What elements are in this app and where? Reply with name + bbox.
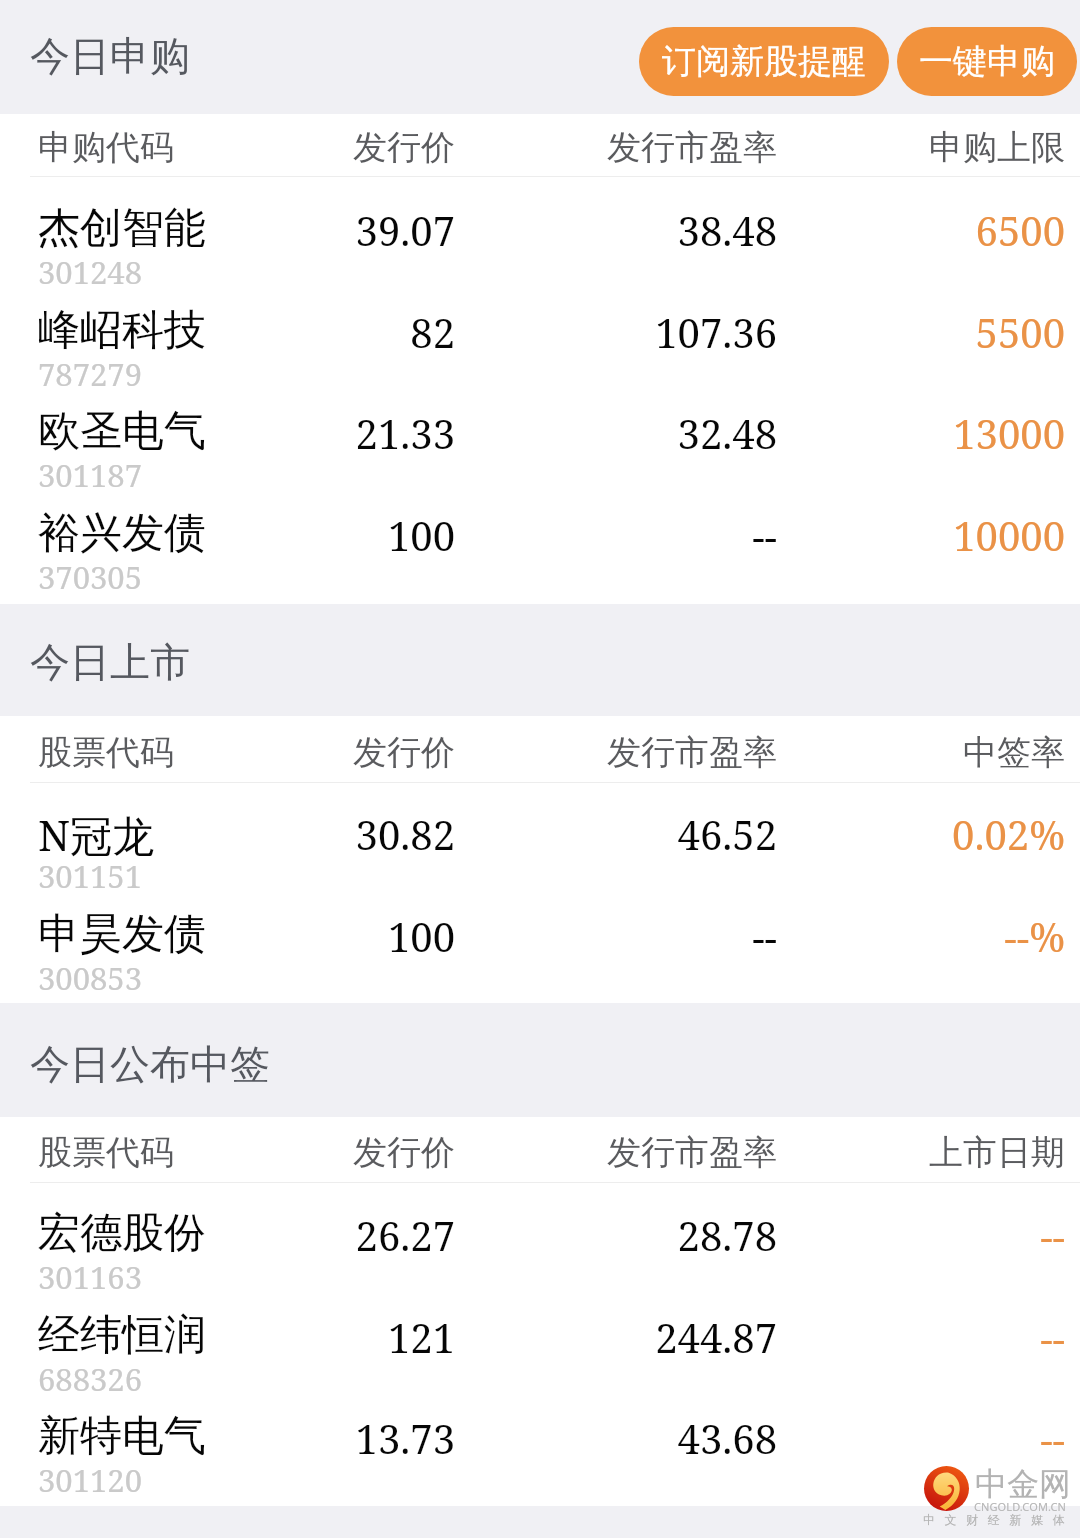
staticText: --%: [745, 909, 1065, 963]
staticText: --: [745, 1310, 1065, 1364]
staticText: 787279: [38, 353, 142, 395]
staticText: 申购代码: [38, 126, 174, 169]
staticText: 裕兴发债: [38, 507, 206, 560]
staticText: 发行价: [135, 1131, 455, 1174]
staticText: 32.48: [457, 406, 777, 460]
staticText: 43.68: [457, 1411, 777, 1465]
staticText: 13.73: [135, 1411, 455, 1465]
staticText: --: [457, 909, 777, 963]
staticText: 今日公布中签: [30, 1039, 270, 1089]
staticText: 6500: [745, 203, 1065, 257]
staticText: 5500: [745, 305, 1065, 359]
staticText: 301163: [38, 1256, 142, 1298]
staticText: 107.36: [457, 305, 777, 359]
button[interactable]: 峰岹科技: [0, 279, 1080, 381]
staticText: 峰岹科技: [38, 304, 206, 357]
staticText: 新特电气: [38, 1410, 206, 1463]
staticText: 今日申购: [30, 31, 190, 81]
staticText: 中文财经新媒体: [923, 1512, 1075, 1527]
button[interactable]: 订阅新股提醒: [639, 27, 889, 96]
staticText: 杰创智能: [38, 202, 206, 255]
staticText: 一键申购: [919, 40, 1055, 83]
staticText: 300853: [38, 957, 142, 999]
staticText: 301248: [38, 251, 142, 293]
staticText: 申购上限: [745, 126, 1065, 169]
staticText: 13000: [745, 406, 1065, 460]
staticText: 申昊发债: [38, 908, 206, 961]
staticText: 宏德股份: [38, 1207, 206, 1260]
button[interactable]: 裕兴发债: [0, 482, 1080, 584]
staticText: 发行价: [135, 731, 455, 774]
button[interactable]: N冠龙: [0, 781, 1080, 883]
button[interactable]: 一键申购: [897, 27, 1077, 96]
staticText: 301120: [38, 1459, 142, 1501]
staticText: 121: [135, 1310, 455, 1364]
staticText: --: [745, 1208, 1065, 1262]
button[interactable]: 申昊发债: [0, 883, 1080, 985]
button[interactable]: 杰创智能: [0, 177, 1080, 279]
staticText: 46.52: [457, 807, 777, 861]
button[interactable]: 欧圣电气: [0, 380, 1080, 482]
staticText: 发行价: [135, 126, 455, 169]
staticText: 今日上市: [30, 637, 190, 687]
staticText: 39.07: [135, 203, 455, 257]
staticText: 244.87: [457, 1310, 777, 1364]
button[interactable]: 经纬恒润: [0, 1284, 1080, 1386]
button[interactable]: 新特电气: [0, 1385, 1080, 1487]
other: 中金网 logo: [924, 1466, 969, 1511]
staticText: --: [457, 508, 777, 562]
staticText: 30.82: [135, 807, 455, 861]
staticText: 10000: [745, 508, 1065, 562]
staticText: 中金网: [975, 1464, 1071, 1504]
staticText: 发行市盈率: [457, 1131, 777, 1174]
staticText: 订阅新股提醒: [662, 40, 866, 83]
staticText: 82: [135, 305, 455, 359]
staticText: 100: [135, 508, 455, 562]
staticText: 301151: [38, 855, 142, 897]
staticText: CNGOLD.COM.CN: [974, 1499, 1066, 1514]
staticText: --: [745, 1411, 1065, 1465]
staticText: 欧圣电气: [38, 405, 206, 458]
staticText: 股票代码: [38, 1131, 174, 1174]
staticText: 上市日期: [745, 1131, 1065, 1174]
staticText: 26.27: [135, 1208, 455, 1262]
staticText: 发行市盈率: [457, 126, 777, 169]
staticText: 经纬恒润: [38, 1309, 206, 1362]
staticText: 股票代码: [38, 731, 174, 774]
staticText: 中签率: [745, 731, 1065, 774]
staticText: 38.48: [457, 203, 777, 257]
staticText: 21.33: [135, 406, 455, 460]
staticText: 301187: [38, 454, 142, 496]
staticText: 100: [135, 909, 455, 963]
staticText: N冠龙: [38, 806, 155, 863]
staticText: 0.02%: [745, 807, 1065, 861]
staticText: 28.78: [457, 1208, 777, 1262]
staticText: 688326: [38, 1358, 142, 1400]
staticText: 发行市盈率: [457, 731, 777, 774]
staticText: 370305: [38, 556, 142, 598]
button[interactable]: 宏德股份: [0, 1182, 1080, 1284]
